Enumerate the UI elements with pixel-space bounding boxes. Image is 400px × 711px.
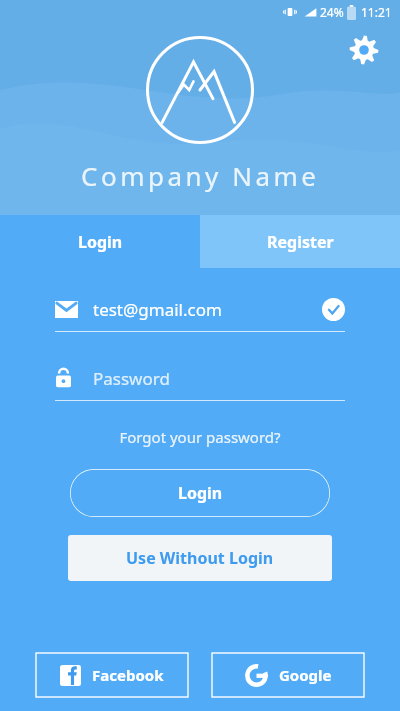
staticText: 11:21 xyxy=(361,4,392,20)
staticText: 24% xyxy=(320,4,344,20)
staticText: test@gmail.com xyxy=(93,298,222,321)
button[interactable]: Use Without Login xyxy=(68,535,332,581)
staticText: Register xyxy=(267,231,334,253)
staticText: Password xyxy=(93,367,170,390)
staticText: Login xyxy=(78,231,123,253)
staticText: Use Without Login xyxy=(126,547,274,569)
button[interactable]: Settings xyxy=(342,28,386,72)
button[interactable]: Password xyxy=(55,360,345,401)
button[interactable]: Register xyxy=(200,215,400,268)
button[interactable]: Login xyxy=(70,469,330,517)
staticText: Login xyxy=(178,482,223,504)
button[interactable]: Forgot your password? xyxy=(0,427,400,447)
button[interactable]: Login xyxy=(0,215,200,268)
staticText: Company Name xyxy=(81,158,320,193)
staticText: Facebook xyxy=(92,665,164,685)
button[interactable]: test@gmail.com xyxy=(55,290,345,332)
staticText: Google xyxy=(279,665,332,685)
button[interactable]: Google xyxy=(212,653,364,697)
staticText: Forgot your password? xyxy=(119,427,281,447)
button[interactable]: Facebook xyxy=(36,653,188,697)
